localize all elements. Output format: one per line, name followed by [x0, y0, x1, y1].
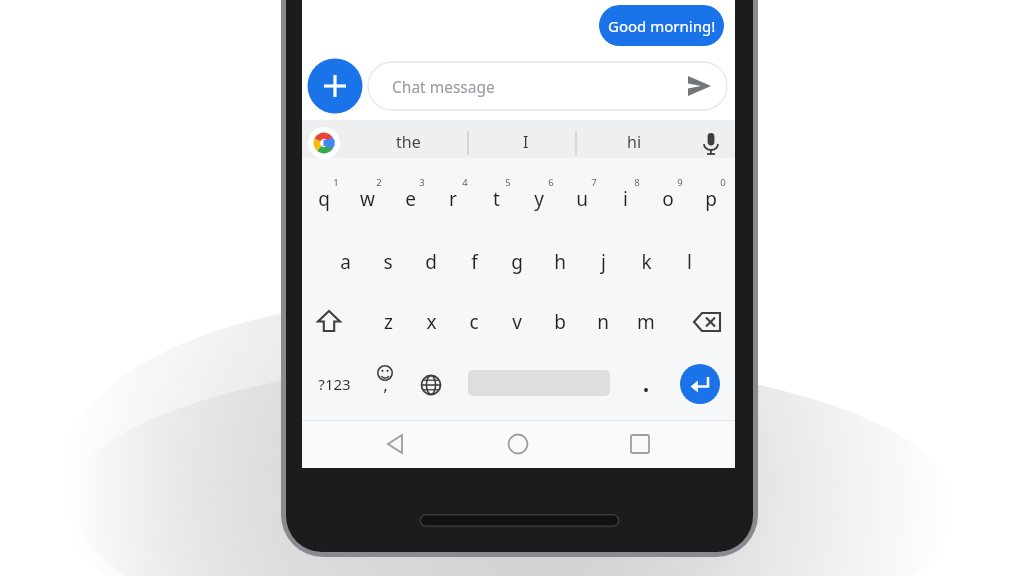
- button[interactable]: Recent apps: [619, 426, 661, 464]
- staticText: 5: [505, 176, 511, 189]
- staticText: k: [641, 249, 652, 275]
- button[interactable]: Home: [497, 426, 539, 464]
- staticText: w: [360, 186, 375, 212]
- staticText: y: [534, 186, 544, 212]
- staticText: m: [637, 309, 655, 335]
- staticText: 1: [333, 176, 339, 189]
- staticText: v: [512, 309, 522, 335]
- button[interactable]: Chat message input: [368, 62, 675, 110]
- button[interactable]: Symbols: [312, 362, 360, 406]
- button[interactable]: Emoji: [368, 360, 404, 406]
- button[interactable]: Space: [468, 366, 610, 402]
- staticText: g: [511, 249, 523, 275]
- staticText: ,: [383, 373, 388, 396]
- button[interactable]: the: [348, 124, 464, 156]
- button[interactable]: Enter: [680, 364, 720, 404]
- staticText: 6: [548, 176, 554, 189]
- button[interactable]: Voice input: [695, 127, 727, 159]
- button[interactable]: Back: [374, 426, 416, 464]
- button[interactable]: Good morning message: [599, 5, 724, 46]
- staticText: 9: [677, 176, 683, 189]
- staticText: r: [449, 186, 457, 212]
- staticText: a: [340, 249, 351, 275]
- button[interactable]: Period: [628, 366, 664, 402]
- staticText: d: [425, 249, 437, 275]
- staticText: 2: [376, 176, 382, 189]
- staticText: z: [384, 309, 393, 335]
- staticText: n: [597, 309, 609, 335]
- staticText: Chat message: [392, 76, 495, 97]
- staticText: u: [576, 186, 588, 212]
- staticText: 7: [591, 176, 597, 189]
- staticText: j: [601, 249, 606, 275]
- staticText: x: [426, 309, 437, 335]
- button[interactable]: Backspace: [688, 300, 728, 344]
- staticText: l: [687, 249, 692, 275]
- staticText: 8: [634, 176, 640, 189]
- staticText: s: [383, 249, 393, 275]
- staticText: q: [318, 186, 330, 212]
- staticText: c: [469, 309, 479, 335]
- staticText: b: [554, 309, 566, 335]
- staticText: 4: [462, 176, 468, 189]
- staticText: ?123: [318, 374, 351, 394]
- staticText: the: [396, 131, 421, 153]
- button[interactable]: hi: [580, 124, 680, 156]
- staticText: p: [705, 186, 717, 212]
- staticText: i: [623, 186, 628, 212]
- staticText: o: [662, 186, 674, 212]
- staticText: 3: [419, 176, 425, 189]
- staticText: hi: [627, 131, 642, 153]
- button[interactable]: Google: [308, 127, 340, 159]
- button[interactable]: Shift: [310, 300, 350, 344]
- staticText: Good morning!: [608, 16, 716, 36]
- staticText: e: [405, 186, 416, 212]
- staticText: h: [554, 249, 566, 275]
- staticText: t: [493, 186, 500, 212]
- staticText: 0: [720, 176, 726, 189]
- button[interactable]: Add attachment: [307, 58, 363, 114]
- button[interactable]: Send: [675, 62, 727, 110]
- staticText: I: [523, 131, 529, 153]
- staticText: f: [471, 249, 478, 275]
- button[interactable]: I: [472, 124, 572, 156]
- button[interactable]: Change language: [413, 362, 449, 406]
